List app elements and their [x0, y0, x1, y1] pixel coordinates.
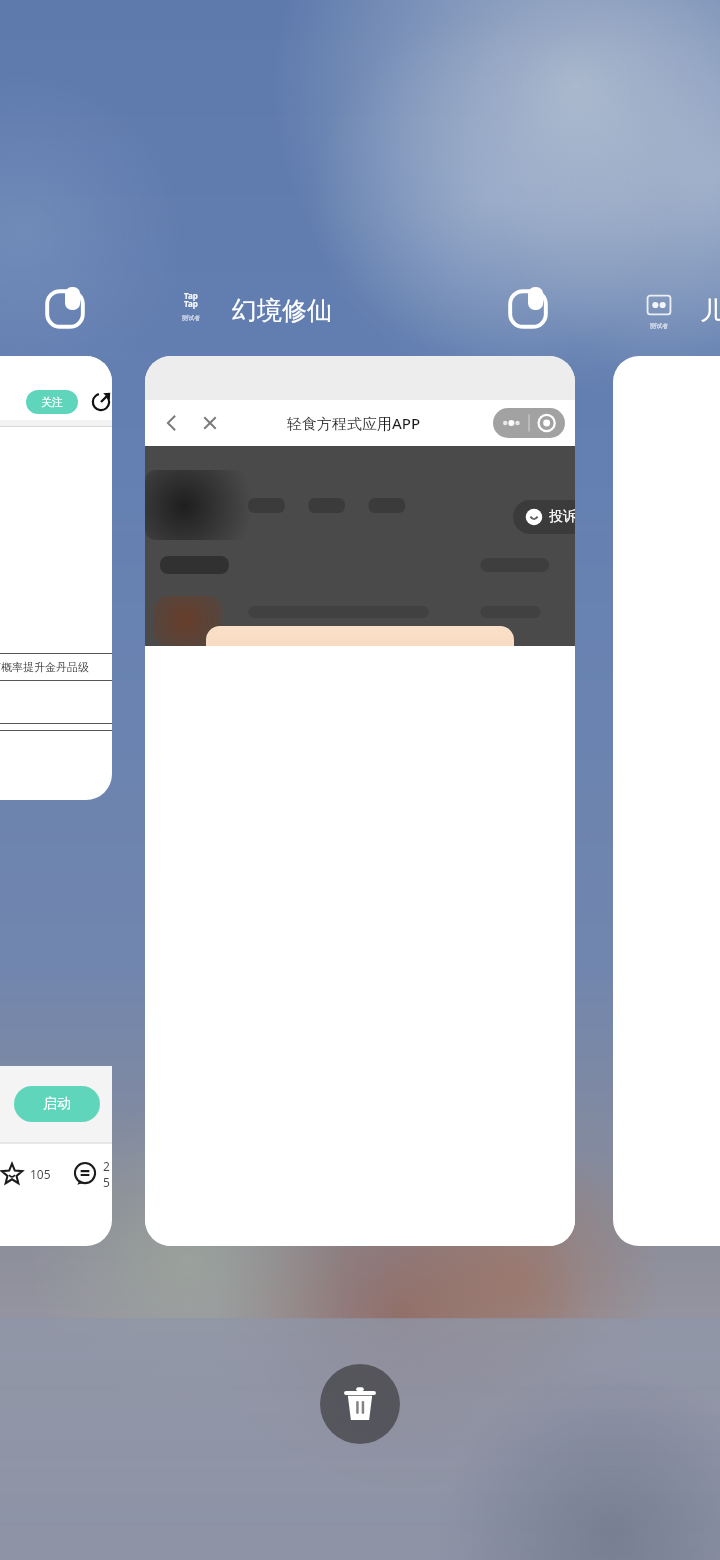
button[interactable]: Clear all: [320, 1364, 400, 1444]
staticText: 测试者: [182, 314, 200, 322]
button[interactable]: 投诉: [525, 500, 575, 534]
button[interactable]: App icon: [42, 286, 88, 332]
staticText: Tap Tap: [184, 290, 198, 309]
button[interactable]: 启动: [14, 1086, 100, 1122]
button[interactable]: Comments: [73, 1162, 97, 1186]
button[interactable]: App icon: [646, 292, 672, 330]
staticText: 儿: [700, 295, 720, 326]
staticText: 关注: [41, 395, 63, 409]
staticText: 105: [30, 1166, 51, 1182]
staticText: 25: [103, 1158, 112, 1190]
button[interactable]: Share: [90, 391, 112, 413]
button[interactable]: Favorite: [0, 1162, 24, 1186]
button[interactable]: 启动: [0, 1066, 112, 1246]
button[interactable]: 幻境修仙: [232, 295, 332, 326]
button[interactable]: App icon: [505, 286, 551, 332]
button[interactable]: 关注: [0, 356, 112, 800]
staticText: 投诉: [549, 508, 575, 526]
button[interactable]: Menu: [493, 408, 565, 438]
staticText: 测试者: [650, 322, 668, 330]
button[interactable]: 关注: [26, 390, 78, 414]
staticText: 启动: [43, 1095, 71, 1113]
staticText: 有概率提升金丹品级: [0, 660, 89, 674]
staticText: 轻食方程式应用APP: [287, 413, 421, 433]
staticText: 幻境修仙: [232, 295, 332, 326]
button[interactable]: Close: [197, 410, 223, 436]
button[interactable]: TapTap: [182, 290, 200, 322]
button[interactable]: [613, 356, 720, 1246]
button[interactable]: Back: [159, 410, 185, 436]
button[interactable]: Back: [145, 356, 575, 1246]
